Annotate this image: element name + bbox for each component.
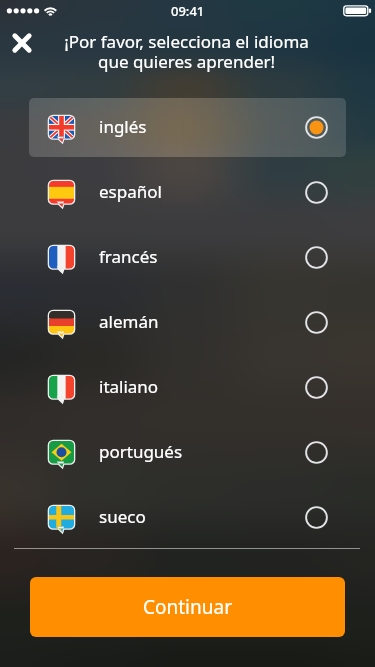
button[interactable]: alemán bbox=[29, 293, 346, 352]
button[interactable]: Cerrar bbox=[6, 32, 38, 54]
staticText: Continuar bbox=[143, 594, 232, 620]
staticText: español bbox=[99, 180, 162, 203]
staticText: inglés bbox=[99, 115, 147, 138]
button[interactable]: inglés bbox=[29, 98, 346, 157]
staticText: francés bbox=[99, 245, 158, 268]
staticText: portugués bbox=[99, 440, 183, 463]
staticText: sueco bbox=[99, 505, 146, 528]
staticText: italiano bbox=[99, 375, 159, 398]
button[interactable]: sueco bbox=[29, 488, 346, 547]
button[interactable]: español bbox=[29, 163, 346, 222]
button[interactable]: portugués bbox=[29, 423, 346, 482]
staticText: 09:41 bbox=[171, 2, 205, 20]
button[interactable]: francés bbox=[29, 228, 346, 287]
staticText: alemán bbox=[99, 310, 159, 333]
staticText: ¡Por favor, selecciona el idioma que qui… bbox=[37, 30, 336, 73]
button[interactable]: Continuar bbox=[30, 577, 345, 637]
button[interactable]: italiano bbox=[29, 358, 346, 417]
